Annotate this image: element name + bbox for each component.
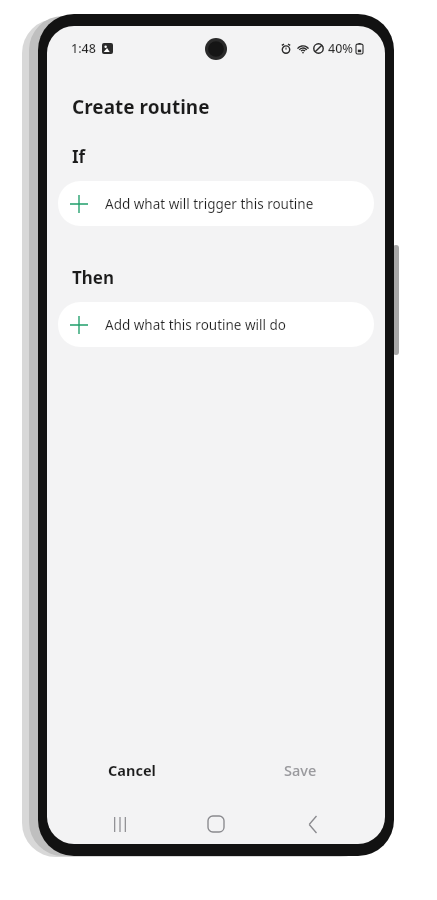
button[interactable]: Home xyxy=(192,804,240,844)
button[interactable]: Back xyxy=(289,804,337,844)
button[interactable]: Add what will trigger this routine xyxy=(58,181,374,226)
button[interactable]: Recent apps xyxy=(96,804,144,844)
staticText: 1:48 xyxy=(71,40,96,57)
staticText: Then xyxy=(72,266,115,289)
staticText: Add what this routine will do xyxy=(105,316,287,334)
button[interactable]: Add what this routine will do xyxy=(58,302,374,347)
staticText: Add what will trigger this routine xyxy=(105,195,314,213)
staticText: Cancel xyxy=(108,760,156,780)
button[interactable]: Save xyxy=(216,750,385,790)
staticText: If xyxy=(72,145,86,168)
staticText: 40% xyxy=(328,40,353,57)
staticText: Create routine xyxy=(72,94,210,120)
button[interactable]: Cancel xyxy=(47,750,216,790)
staticText: Save xyxy=(284,760,317,780)
